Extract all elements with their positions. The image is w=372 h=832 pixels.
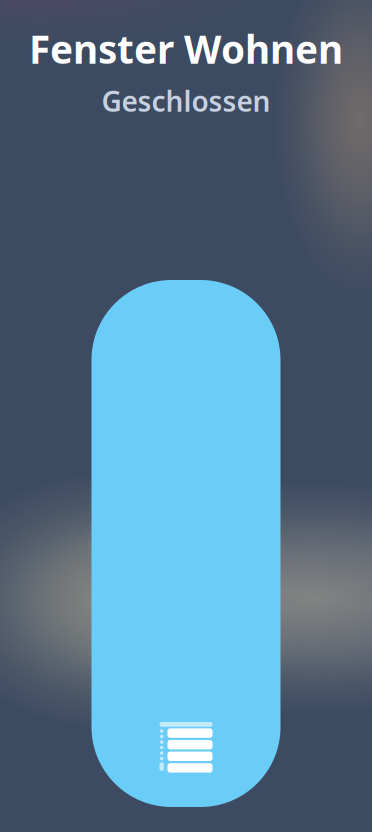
staticText: Geschlossen — [101, 82, 270, 119]
staticText: Fenster Wohnen — [29, 23, 343, 74]
button[interactable] — [91, 280, 280, 807]
